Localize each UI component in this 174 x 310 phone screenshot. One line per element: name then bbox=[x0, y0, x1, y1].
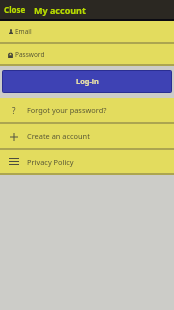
button[interactable]: Password bbox=[0, 44, 174, 64]
button[interactable]: Create an account bbox=[0, 124, 174, 148]
staticText: Create an account bbox=[27, 131, 90, 141]
staticText: My account bbox=[34, 4, 86, 16]
button[interactable]: Log-in bbox=[3, 71, 171, 92]
button[interactable]: Close bbox=[0, 4, 30, 15]
staticText: Close bbox=[4, 4, 26, 15]
staticText: Privacy Policy bbox=[27, 157, 74, 167]
button[interactable]: ? bbox=[0, 98, 174, 122]
staticText: Email bbox=[15, 27, 32, 36]
staticText: Password bbox=[15, 50, 45, 59]
staticText: Log-in bbox=[76, 76, 99, 86]
button[interactable]: Email bbox=[0, 21, 174, 42]
staticText: Forgot your password? bbox=[27, 105, 107, 115]
button[interactable]: Privacy Policy bbox=[0, 150, 174, 173]
staticText: ? bbox=[12, 105, 16, 116]
